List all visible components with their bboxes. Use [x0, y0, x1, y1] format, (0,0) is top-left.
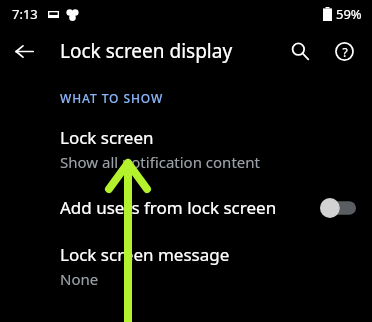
staticText: 59% — [336, 5, 362, 23]
button[interactable]: Search — [280, 31, 320, 71]
staticText: Lock screen — [60, 126, 154, 149]
staticText: Show all notification content — [60, 152, 260, 172]
button[interactable]: Lock screen — [0, 124, 372, 174]
button[interactable]: Help — [324, 31, 364, 71]
staticText: Lock screen message — [60, 243, 230, 266]
button[interactable]: Back — [4, 31, 44, 71]
staticText: 7:13 — [12, 5, 38, 23]
staticText: WHAT TO SHOW — [60, 90, 164, 106]
staticText: ? — [342, 44, 348, 60]
staticText: Add users from lock screen — [60, 196, 320, 219]
button[interactable]: Add users from lock screen — [0, 196, 372, 219]
staticText: Lock screen display — [60, 38, 233, 64]
staticText: None — [60, 269, 99, 289]
button[interactable]: Lock screen message — [0, 241, 372, 291]
